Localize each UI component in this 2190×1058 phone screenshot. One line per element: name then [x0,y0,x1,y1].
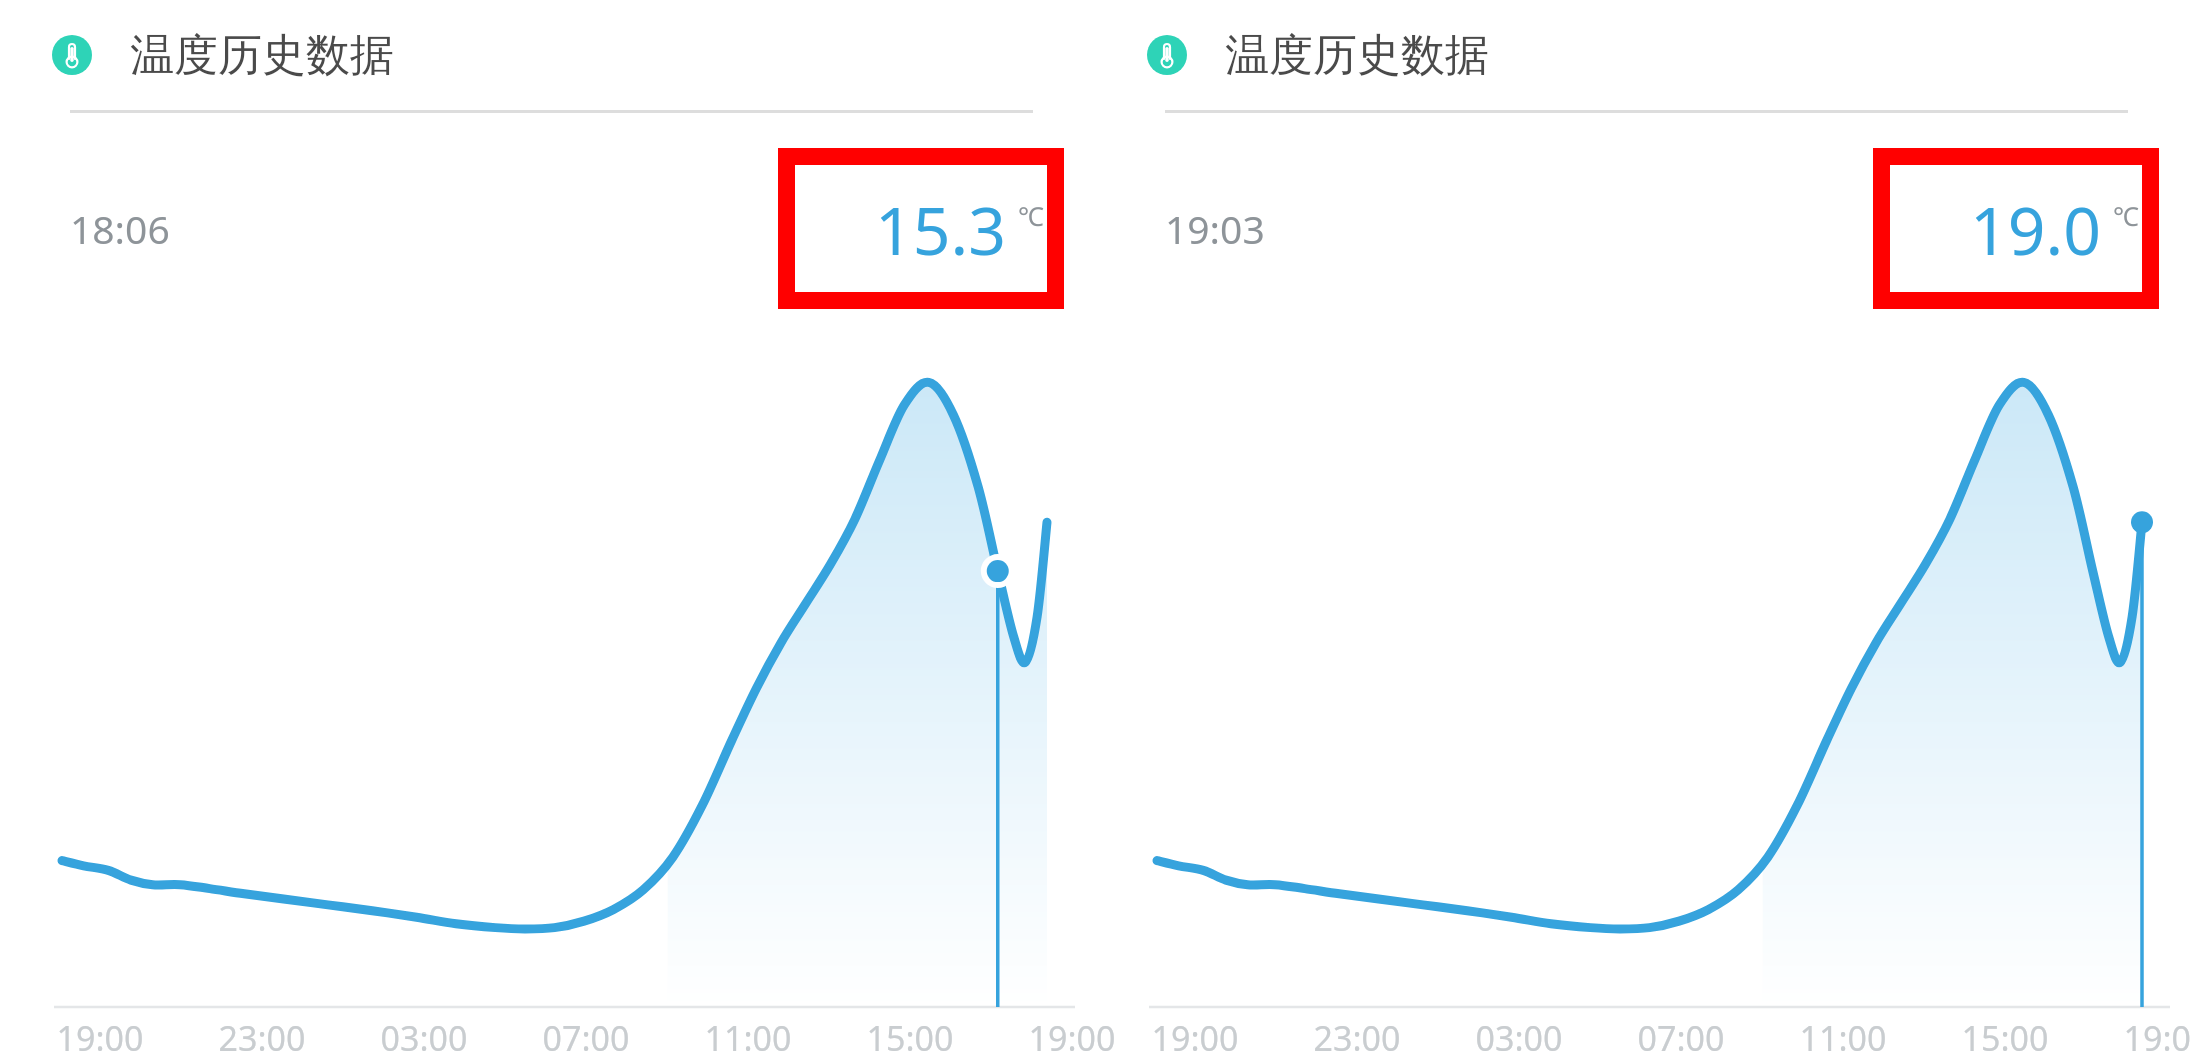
staticText: 温度历史数据 [130,28,394,83]
staticText: 15.3 [875,184,1006,274]
staticText: 11:00 [1783,1015,1903,1058]
button[interactable]: 19.0 [1873,148,2159,309]
staticText: 18:06 [70,202,170,255]
staticText: 11:00 [688,1015,808,1058]
staticText: 19.0 [1970,184,2101,274]
staticText: 03:00 [364,1015,484,1058]
staticText: 19:03 [1165,202,1265,255]
staticText: 19:00 [40,1015,160,1058]
staticText: 温度历史数据 [1225,28,1489,83]
staticText: 19:00 [1135,1015,1255,1058]
staticText: 19:00 [1012,1015,1132,1058]
staticText: 07:00 [526,1015,646,1058]
staticText: 15:00 [850,1015,970,1058]
staticText: ℃ [1018,198,1044,233]
staticText: 23:00 [202,1015,322,1058]
staticText: 23:00 [1297,1015,1417,1058]
other: Temperature [52,35,92,75]
staticText: 15:00 [1945,1015,2065,1058]
button[interactable]: Temperature [1095,0,2190,110]
button[interactable]: 15.3 [778,148,1064,309]
other: Temperature [1147,35,1187,75]
staticText: 03:00 [1459,1015,1579,1058]
staticText: ℃ [2113,198,2139,233]
staticText: 19:00 [2107,1015,2190,1058]
button[interactable]: Temperature [0,0,1095,110]
staticText: 07:00 [1621,1015,1741,1058]
